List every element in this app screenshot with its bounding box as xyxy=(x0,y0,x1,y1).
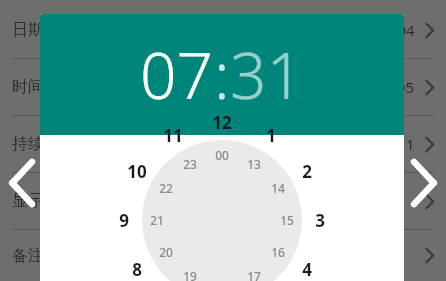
staticText: 05 xyxy=(397,77,415,97)
button[interactable]: 9 xyxy=(109,205,139,235)
button[interactable]: 21 xyxy=(142,205,172,235)
button[interactable]: 1 xyxy=(256,120,286,150)
staticText: 23 xyxy=(183,156,197,172)
staticText: 12 xyxy=(212,111,232,134)
button[interactable]: 3 xyxy=(305,205,335,235)
staticText: : xyxy=(214,31,230,118)
button[interactable]: 07 xyxy=(140,31,214,118)
button[interactable]: 17 xyxy=(239,261,269,281)
button[interactable]: 22 xyxy=(151,173,181,203)
button[interactable]: 31 xyxy=(230,31,304,118)
button[interactable]: 00 xyxy=(207,140,237,170)
button[interactable]: 显示 xyxy=(0,173,446,229)
staticText: 13 xyxy=(247,156,261,172)
staticText: 时间 xyxy=(12,77,44,97)
button[interactable]: 备注 xyxy=(0,230,446,281)
button[interactable]: 10 xyxy=(122,156,152,186)
staticText: 22 xyxy=(159,180,173,196)
button[interactable]: 4 xyxy=(292,254,322,281)
button[interactable]: 13 xyxy=(239,149,269,179)
staticText: 9 xyxy=(119,209,129,232)
button[interactable]: 持续 xyxy=(0,116,446,172)
staticText: 1 xyxy=(406,134,415,154)
staticText: 2022.07.04 xyxy=(338,20,415,40)
button[interactable]: 14 xyxy=(263,173,293,203)
staticText: 备注 xyxy=(12,246,44,266)
button[interactable]: Previous xyxy=(0,152,46,214)
staticText: 16 xyxy=(271,244,285,260)
staticText: 持续 xyxy=(12,134,44,154)
staticText: 15 xyxy=(280,212,294,228)
staticText: 10 xyxy=(127,160,147,183)
button[interactable]: 19 xyxy=(175,261,205,281)
button[interactable]: 15 xyxy=(272,205,302,235)
staticText: 14 xyxy=(271,180,285,196)
button[interactable]: 日期 xyxy=(0,2,446,58)
staticText: 11 xyxy=(163,124,183,147)
staticText: 00 xyxy=(215,147,229,163)
staticText: 1 xyxy=(266,124,276,147)
button[interactable]: 16 xyxy=(263,237,293,267)
button[interactable]: 8 xyxy=(122,254,152,281)
staticText: 20 xyxy=(159,244,173,260)
staticText: 显示 xyxy=(12,191,44,211)
staticText: 21 xyxy=(150,212,164,228)
staticText: 2 xyxy=(302,160,312,183)
button[interactable]: 时间 xyxy=(0,59,446,115)
staticText: 4 xyxy=(302,258,312,281)
button[interactable]: 12 xyxy=(207,107,237,137)
button[interactable]: Next xyxy=(400,152,446,214)
staticText: 日期 xyxy=(12,20,44,40)
button[interactable]: 2 xyxy=(292,156,322,186)
staticText: 17 xyxy=(247,268,261,281)
button[interactable]: 11 xyxy=(158,120,188,150)
staticText: 3 xyxy=(315,209,325,232)
button[interactable]: 20 xyxy=(151,237,181,267)
button[interactable]: 23 xyxy=(175,149,205,179)
staticText: 8 xyxy=(132,258,142,281)
staticText: 19 xyxy=(183,268,197,281)
